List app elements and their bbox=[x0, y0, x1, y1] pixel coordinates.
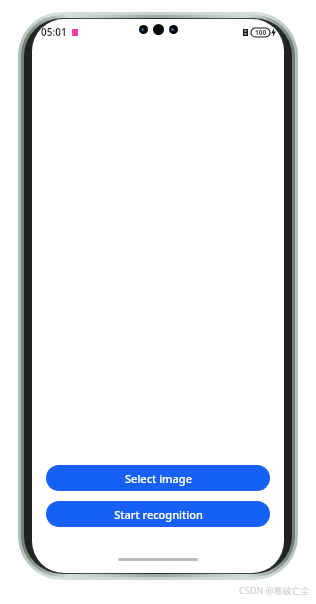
button[interactable]: Start recognition bbox=[46, 501, 270, 527]
staticText: 05:01 bbox=[41, 25, 67, 39]
staticText: CSDN @看破亡尘 bbox=[239, 584, 310, 596]
button[interactable]: Select image bbox=[46, 465, 270, 491]
staticText: Select image bbox=[125, 471, 192, 486]
staticText: Start recognition bbox=[114, 507, 203, 522]
staticText: 100 bbox=[255, 28, 267, 37]
